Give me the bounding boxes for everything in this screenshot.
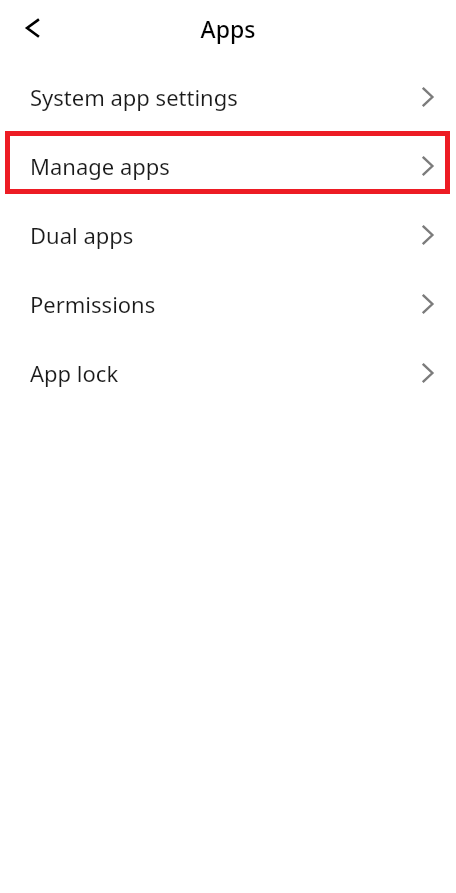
button[interactable]: App lock <box>0 338 456 407</box>
staticText: App lock <box>30 358 418 388</box>
button[interactable]: System app settings <box>0 62 456 131</box>
button[interactable]: Manage apps <box>0 131 456 200</box>
button[interactable]: Permissions <box>0 269 456 338</box>
staticText: System app settings <box>30 82 418 112</box>
staticText: Apps <box>0 13 456 44</box>
staticText: Permissions <box>30 289 418 319</box>
button[interactable]: Back <box>18 11 52 45</box>
button[interactable]: Dual apps <box>0 200 456 269</box>
staticText: Manage apps <box>30 151 418 181</box>
staticText: Dual apps <box>30 220 418 250</box>
